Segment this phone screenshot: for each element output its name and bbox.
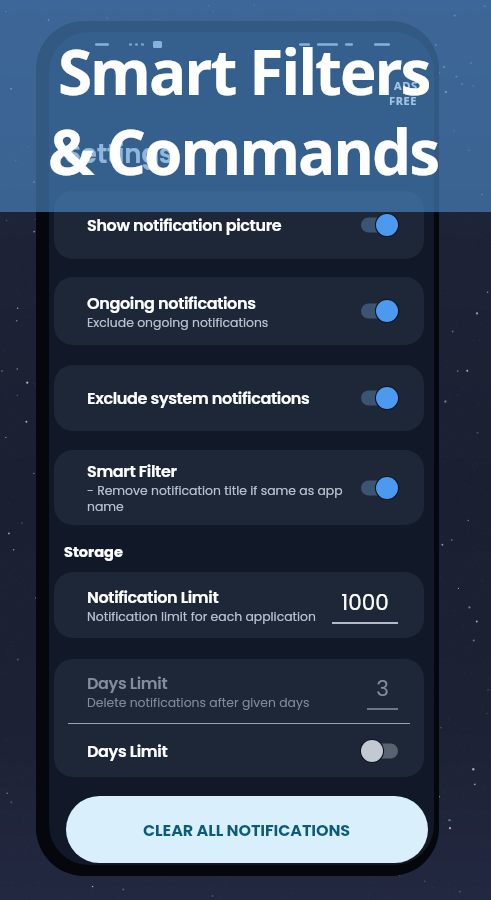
staticText: Delete notifications after given days: [87, 694, 310, 711]
staticText: Settings: [65, 136, 174, 172]
button[interactable]: Days Limit: [54, 659, 424, 777]
button[interactable]: Exclude system notifications: [54, 365, 424, 431]
staticText: FREE: [389, 93, 418, 108]
staticText: Smart Filter: [87, 460, 177, 482]
staticText: Exclude ongoing notifications: [87, 314, 269, 331]
staticText: Show notification picture: [87, 214, 282, 236]
staticText: Smart Filters: [58, 29, 430, 113]
staticText: Notification Limit: [87, 586, 219, 608]
staticText: ADS: [394, 78, 418, 93]
staticText: Exclude system notifications: [87, 387, 310, 409]
button[interactable]: Notification Limit: [54, 572, 424, 638]
staticText: & Commands: [48, 109, 439, 193]
staticText: Days Limit: [87, 672, 168, 694]
staticText: Notification limit for each application: [87, 608, 316, 625]
staticText: Days Limit: [87, 740, 168, 762]
button[interactable]: Smart Filter: [54, 450, 424, 525]
button[interactable]: Ongoing notifications: [54, 277, 424, 345]
staticText: - Remove notification title if same as a…: [87, 482, 353, 515]
staticText: Ongoing notifications: [87, 292, 256, 314]
staticText: 1000: [341, 587, 389, 617]
button[interactable]: Toggle on: [361, 299, 398, 323]
button[interactable]: Toggle on: [361, 386, 398, 410]
button[interactable]: Toggle on: [361, 476, 398, 500]
staticText: 3: [376, 673, 389, 703]
button[interactable]: Toggle off: [361, 739, 398, 763]
staticText: CLEAR ALL NOTIFICATIONS: [143, 819, 351, 841]
button[interactable]: Show notification picture: [54, 191, 424, 259]
staticText: Storage: [64, 542, 123, 562]
button[interactable]: CLEAR ALL NOTIFICATIONS: [66, 796, 428, 863]
button[interactable]: Toggle on: [361, 213, 398, 237]
